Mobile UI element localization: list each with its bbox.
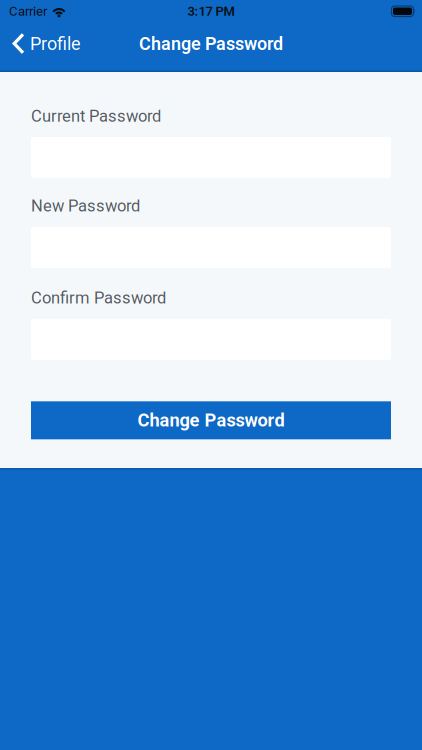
staticText: 3:17 PM: [187, 4, 234, 19]
staticText: Current Password: [31, 106, 161, 126]
staticText: Confirm Password: [31, 288, 166, 308]
button[interactable]: Back to Profile: [0, 33, 81, 55]
button[interactable]: Change Password: [31, 401, 391, 439]
staticText: Change Password: [137, 410, 284, 431]
staticText: Carrier: [9, 4, 47, 19]
staticText: Profile: [30, 33, 81, 54]
staticText: New Password: [31, 196, 140, 216]
staticText: Change Password: [139, 33, 283, 54]
